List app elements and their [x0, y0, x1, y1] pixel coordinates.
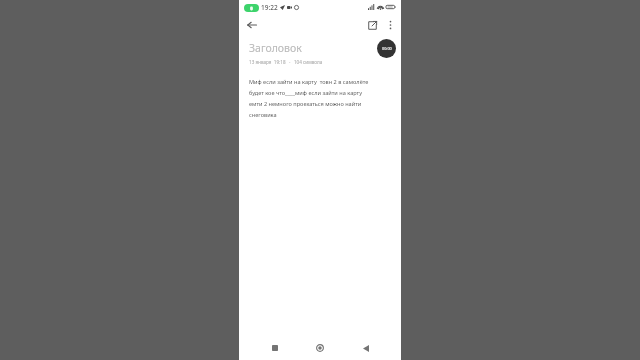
button[interactable]: Audio note — [377, 39, 396, 58]
button[interactable]: Back — [356, 338, 376, 358]
staticText: 13 января 19:18 · 104 символа — [249, 59, 323, 65]
staticText: 00:00 — [382, 46, 392, 51]
button[interactable]: Recent apps — [265, 338, 285, 358]
button[interactable]: Share — [363, 16, 381, 34]
staticText: Заголовок — [249, 41, 302, 55]
button[interactable]: Home — [310, 338, 330, 358]
button[interactable]: Back — [243, 16, 261, 34]
button[interactable]: More options — [381, 16, 399, 34]
staticText: будет кое что____миф если зайти на карту — [249, 89, 363, 97]
staticText: емти 2 немного проехаться можно найти — [249, 100, 362, 108]
staticText: снеговика — [249, 111, 277, 119]
staticText: 19:22 — [261, 3, 278, 12]
staticText: Миф если зайти на карту товн 2 в самолёт… — [249, 78, 369, 86]
